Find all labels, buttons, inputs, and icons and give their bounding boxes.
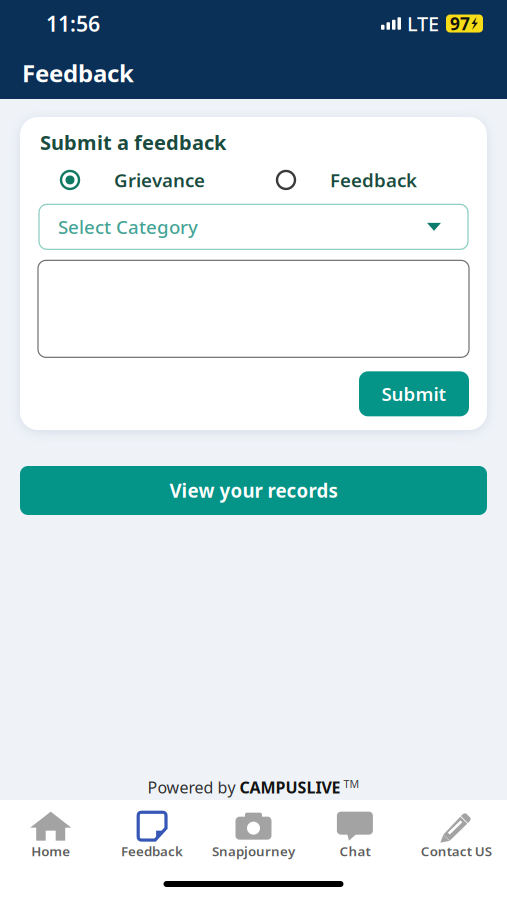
staticText: TM xyxy=(340,777,359,791)
button[interactable]: Grievance xyxy=(60,168,205,192)
staticText: LTE xyxy=(407,10,439,37)
staticText: View your records xyxy=(169,478,337,503)
button[interactable]: Feedback xyxy=(276,168,417,192)
staticText: Feedback xyxy=(121,842,183,860)
button[interactable]: Select Category xyxy=(39,204,468,249)
staticText: 11:56 xyxy=(46,9,100,38)
button[interactable]: Submit xyxy=(359,371,469,416)
staticText: Chat xyxy=(339,842,370,860)
staticText: Submit xyxy=(381,381,446,406)
staticText: Submit a feedback xyxy=(40,129,226,156)
staticText: Snapjourney xyxy=(212,842,295,860)
staticText: CAMPUSLIVE xyxy=(239,777,340,798)
staticText: Feedback xyxy=(330,168,417,192)
staticText: Home xyxy=(31,842,70,860)
staticText: Select Category xyxy=(58,214,198,239)
staticText: Feedback xyxy=(22,57,134,89)
button[interactable]: Feedback xyxy=(101,811,203,860)
button[interactable]: Snapjourney xyxy=(203,811,304,860)
button[interactable]: Chat xyxy=(304,811,406,860)
staticText: Grievance xyxy=(114,168,205,192)
staticText: 97 xyxy=(450,12,470,35)
staticText: Powered by xyxy=(147,777,239,798)
button[interactable]: Contact US xyxy=(406,811,507,860)
button[interactable]: View your records xyxy=(20,466,487,515)
button[interactable]: Comments xyxy=(38,260,469,357)
button[interactable]: Home xyxy=(0,811,101,860)
staticText: Contact US xyxy=(421,842,492,860)
